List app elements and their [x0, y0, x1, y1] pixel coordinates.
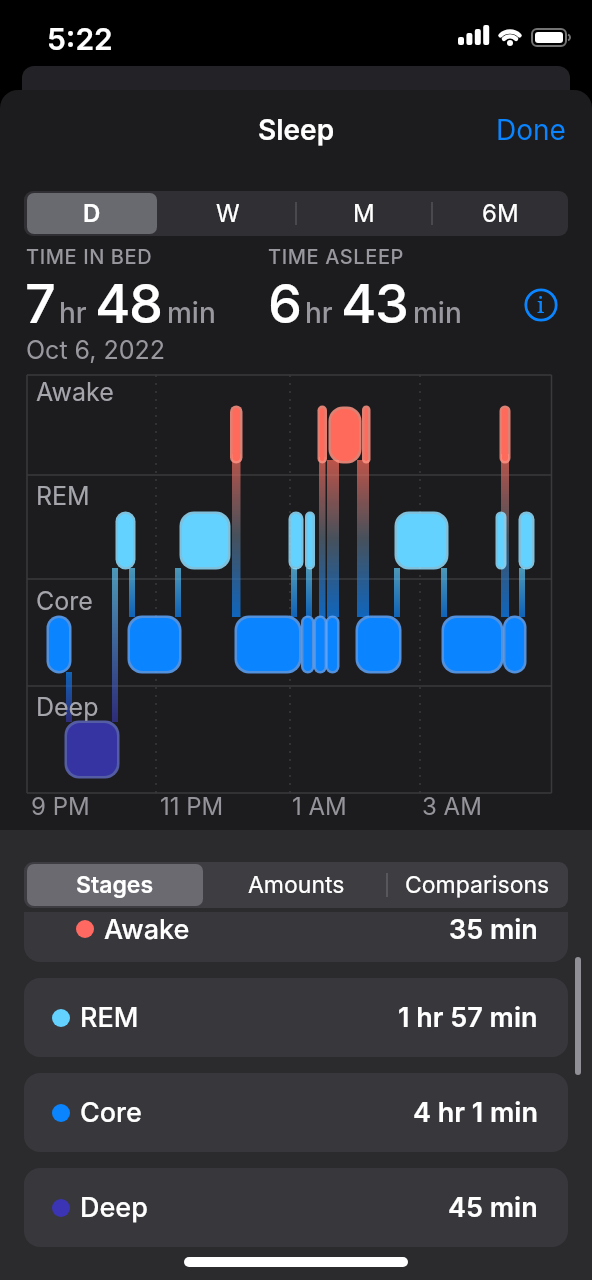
- button[interactable]: i: [524, 288, 558, 322]
- staticText: 4 hr 1 min: [413, 1096, 538, 1129]
- button[interactable]: Deep: [24, 1168, 568, 1247]
- button[interactable]: Stages: [24, 862, 206, 908]
- staticText: Sleep: [258, 113, 335, 147]
- staticText: Awake: [104, 913, 190, 946]
- staticText: 6M: [482, 199, 519, 228]
- staticText: 9 PM: [31, 792, 90, 821]
- button[interactable]: Amounts: [206, 862, 387, 908]
- staticText: REM: [80, 1001, 139, 1034]
- staticText: 43: [341, 271, 408, 336]
- staticText: 48: [95, 271, 162, 336]
- staticText: Deep: [80, 1191, 148, 1224]
- staticText: i: [537, 289, 545, 319]
- staticText: Deep: [36, 692, 99, 722]
- button[interactable]: Comparisons: [387, 862, 568, 908]
- staticText: 1 AM: [292, 792, 347, 821]
- button[interactable]: D: [24, 191, 160, 236]
- staticText: D: [83, 199, 101, 228]
- staticText: W: [216, 199, 240, 228]
- staticText: 35 min: [449, 913, 538, 946]
- staticText: 45 min: [448, 1191, 538, 1224]
- button[interactable]: REM: [24, 978, 568, 1057]
- staticText: 3 AM: [422, 792, 482, 821]
- staticText: TIME IN BED: [26, 245, 153, 269]
- staticText: 11 PM: [160, 792, 224, 821]
- button[interactable]: Core: [24, 1073, 568, 1152]
- staticText: TIME ASLEEP: [268, 245, 405, 269]
- staticText: hr: [59, 296, 87, 330]
- staticText: 7: [25, 271, 55, 336]
- staticText: Done: [496, 113, 566, 147]
- staticText: Core: [36, 586, 93, 616]
- button[interactable]: 6M: [432, 191, 568, 236]
- staticText: 5:22: [47, 21, 113, 57]
- button[interactable]: W: [160, 191, 296, 236]
- staticText: 1 hr 57 min: [398, 1001, 538, 1034]
- button[interactable]: Awake: [24, 912, 568, 962]
- staticText: hr: [305, 296, 333, 330]
- staticText: Awake: [36, 377, 114, 407]
- staticText: Comparisons: [405, 871, 550, 899]
- staticText: Amounts: [248, 871, 345, 899]
- staticText: Core: [80, 1096, 142, 1129]
- staticText: Stages: [76, 871, 154, 899]
- staticText: min: [167, 296, 216, 330]
- staticText: M: [353, 199, 375, 228]
- staticText: Oct 6, 2022: [26, 335, 166, 365]
- staticText: 6: [268, 271, 301, 336]
- staticText: min: [413, 296, 462, 330]
- button[interactable]: Done: [496, 113, 566, 147]
- button[interactable]: M: [296, 191, 432, 236]
- staticText: REM: [36, 481, 90, 511]
